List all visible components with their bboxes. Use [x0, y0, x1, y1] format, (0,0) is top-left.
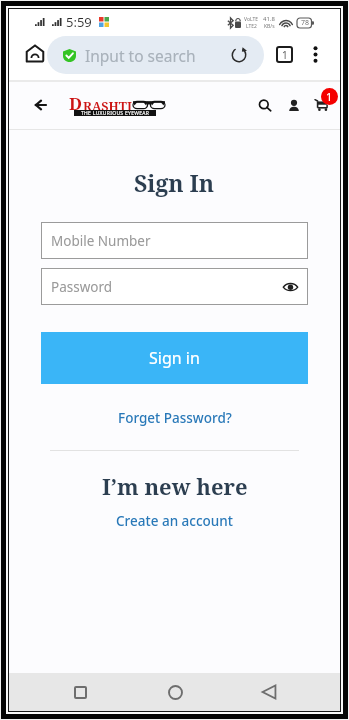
staticText: RASHTI — [83, 98, 132, 115]
staticText: 78 — [301, 18, 310, 28]
staticText: Password — [51, 278, 113, 296]
staticText: I’m new here — [102, 471, 248, 501]
button[interactable]: Back — [28, 93, 52, 117]
staticText: VoLTE — [244, 16, 259, 23]
button[interactable]: Sign in — [41, 332, 308, 384]
button[interactable]: Search — [253, 93, 277, 117]
button[interactable]: Recent apps — [57, 673, 103, 711]
button[interactable]: More options — [303, 42, 327, 66]
staticText: Sign In — [134, 167, 215, 198]
button[interactable]: Cart — [306, 86, 340, 120]
button[interactable]: Home — [152, 673, 198, 711]
button[interactable]: Create an account — [110, 509, 239, 533]
button[interactable]: Mobile Number — [41, 222, 308, 259]
button[interactable]: Forget Password? — [112, 406, 238, 430]
staticText: 1 — [326, 89, 333, 104]
button[interactable]: Tabs — [272, 42, 296, 66]
staticText: 5:59 — [66, 13, 92, 31]
staticText: 1 — [282, 48, 288, 62]
button[interactable]: Account — [282, 93, 306, 117]
button[interactable]: Password — [41, 268, 308, 305]
staticText: KB/s — [264, 23, 275, 30]
staticText: Sign in — [149, 347, 200, 369]
button[interactable]: Home — [22, 41, 47, 66]
button[interactable]: Back — [246, 673, 292, 711]
staticText: LTE2 — [246, 23, 257, 30]
staticText: Forget Password? — [118, 409, 232, 427]
button[interactable]: Input to search — [47, 36, 264, 74]
staticText: Input to search — [85, 45, 196, 66]
staticText: 41.8 — [263, 15, 275, 23]
staticText: Mobile Number — [51, 232, 151, 250]
staticText: Create an account — [116, 512, 233, 530]
staticText: THE LUXURIOUS EYEWEAR — [81, 110, 150, 116]
staticText: D — [69, 92, 83, 115]
